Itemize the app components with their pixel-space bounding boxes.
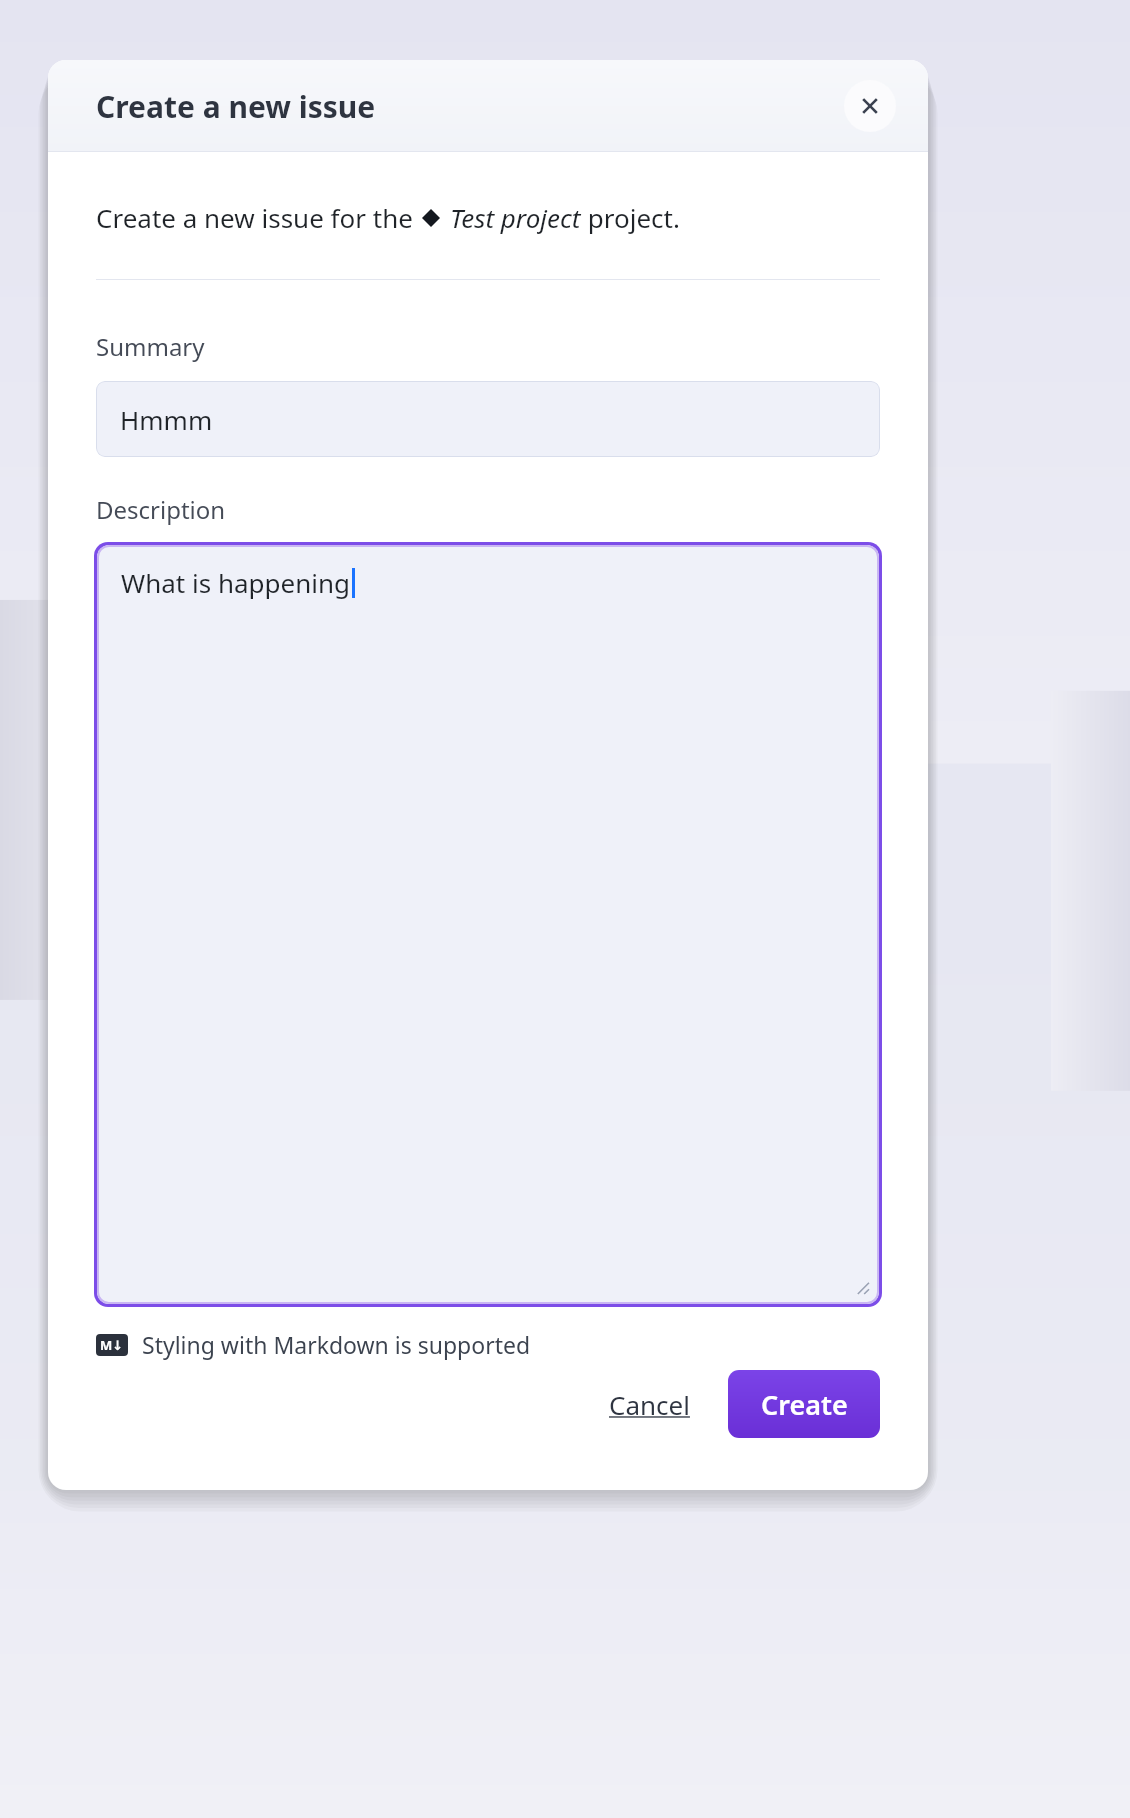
staticText: Create a new issue for the [96, 200, 420, 235]
button[interactable]: Cancel [599, 1377, 700, 1432]
staticText: What is happening [121, 565, 351, 600]
staticText: Styling with Markdown is supported [142, 1329, 531, 1360]
staticText: project. [581, 200, 680, 235]
button[interactable]: What is happening [97, 545, 879, 1304]
staticText: Description [96, 493, 226, 526]
button[interactable]: Close [844, 80, 896, 132]
staticText: Test project [450, 200, 581, 235]
button[interactable]: Hmmm [96, 381, 880, 457]
button[interactable]: Create [728, 1370, 880, 1438]
staticText: Cancel [609, 1387, 690, 1422]
staticText: Hmmm [120, 402, 213, 437]
staticText: M↓ [100, 1336, 124, 1354]
staticText: Summary [96, 330, 205, 363]
staticText: Create a new issue [96, 86, 376, 127]
staticText: Create [761, 1386, 848, 1423]
